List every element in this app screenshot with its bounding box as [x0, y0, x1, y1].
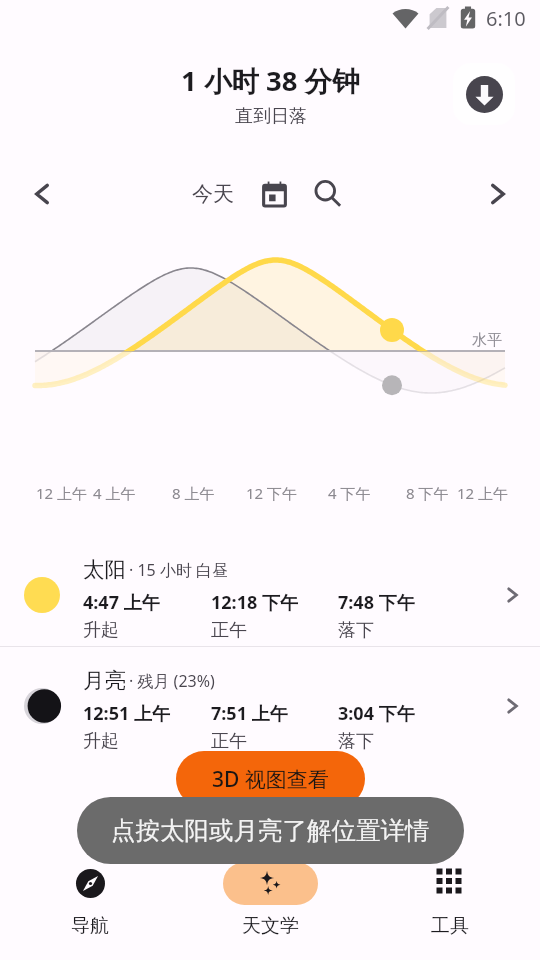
staticText: 4 下午	[328, 483, 371, 503]
button[interactable]: 今天	[187, 175, 239, 213]
staticText: 点按太阳或月亮了解位置详情	[111, 815, 430, 846]
staticText: 升起	[83, 619, 119, 642]
button[interactable]: Pick a date	[255, 175, 293, 213]
staticText: 3D 视图查看	[212, 765, 329, 794]
staticText: 3:04 下午	[338, 701, 415, 726]
staticText: 正午	[211, 619, 247, 642]
button[interactable]: 太阳	[0, 536, 540, 646]
staticText: 7:51 上午	[211, 701, 288, 726]
staticText: 水平	[472, 331, 502, 350]
staticText: 8 下午	[406, 483, 449, 503]
staticText: 落下	[338, 730, 374, 753]
staticText: 12:18 下午	[211, 590, 298, 615]
staticText: 6:10	[486, 5, 526, 32]
staticText: 天文学	[242, 914, 299, 938]
staticText: 落下	[338, 619, 374, 642]
staticText: 7:48 下午	[338, 590, 415, 615]
button[interactable]: 天文学	[180, 848, 360, 938]
staticText: 1 小时 38 分钟	[181, 62, 360, 100]
staticText: 月亮	[83, 667, 126, 694]
button[interactable]: Next day	[477, 173, 519, 215]
staticText: 升起	[83, 730, 119, 753]
staticText: 4 上午	[93, 483, 136, 503]
staticText: 12 下午	[246, 483, 298, 503]
staticText: 直到日落	[235, 105, 307, 128]
staticText: 今天	[192, 181, 234, 207]
button[interactable]: Search	[309, 175, 347, 213]
staticText: 导航	[71, 914, 109, 938]
staticText: 12 上午	[36, 483, 88, 503]
staticText: 8 上午	[172, 483, 215, 503]
staticText: 工具	[431, 914, 469, 938]
button[interactable]: Download offline data	[453, 63, 515, 125]
button[interactable]: 3D 视图查看	[176, 751, 365, 807]
staticText: · 残月 (23%)	[129, 670, 215, 692]
button[interactable]: Previous day	[21, 173, 63, 215]
staticText: 4:47 上午	[83, 590, 160, 615]
button[interactable]: 工具	[360, 848, 540, 938]
staticText: · 15 小时 白昼	[129, 559, 229, 581]
staticText: 正午	[211, 730, 247, 753]
staticText: 12 上午	[457, 483, 509, 503]
button[interactable]: 月亮	[0, 647, 540, 757]
staticText: 12:51 上午	[83, 701, 170, 726]
staticText: 太阳	[83, 556, 126, 583]
button[interactable]: 导航	[0, 848, 180, 938]
